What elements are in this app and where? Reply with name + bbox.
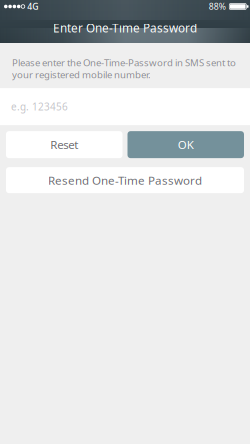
staticText: e.g. 123456 xyxy=(11,100,68,113)
staticText: your registered mobile number. xyxy=(12,68,151,81)
staticText: Reset xyxy=(50,137,78,152)
staticText: 4G xyxy=(27,1,38,12)
staticText: Please enter the One-Time-Password in SM… xyxy=(12,56,236,69)
staticText: 88% xyxy=(209,1,226,12)
staticText: Resend One-Time Password xyxy=(48,172,202,188)
staticText: Enter One-Time Password xyxy=(53,20,197,36)
button[interactable]: Reset xyxy=(6,131,122,158)
button[interactable]: OK xyxy=(127,131,244,158)
button[interactable]: Resend One-Time Password xyxy=(6,167,244,193)
staticText: OK xyxy=(178,137,194,152)
